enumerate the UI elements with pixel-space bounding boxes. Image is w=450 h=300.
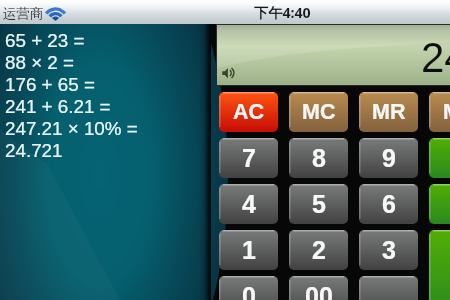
staticText: MC: [302, 100, 336, 124]
staticText: 8: [312, 144, 326, 172]
button[interactable]: =: [429, 230, 450, 300]
staticText: 4: [242, 190, 256, 218]
staticText: .: [385, 282, 392, 300]
button[interactable]: 6: [359, 184, 418, 224]
button[interactable]: MC: [289, 92, 348, 132]
staticText: AC: [233, 100, 265, 124]
staticText: 0: [242, 282, 256, 300]
staticText: 65 + 23 =: [5, 30, 85, 51]
staticText: 1: [242, 236, 256, 264]
staticText: M+: [443, 100, 450, 124]
button[interactable]: 5: [289, 184, 348, 224]
button[interactable]: 1: [219, 230, 278, 270]
staticText: 2: [312, 236, 326, 264]
staticText: 24: [421, 34, 450, 81]
button[interactable]: ×: [429, 184, 450, 224]
button[interactable]: 00: [289, 276, 348, 300]
staticText: MR: [372, 100, 406, 124]
button[interactable]: 3: [359, 230, 418, 270]
button[interactable]: 2: [289, 230, 348, 270]
button[interactable]: 4: [219, 184, 278, 224]
button[interactable]: 9: [359, 138, 418, 178]
staticText: 6: [382, 190, 396, 218]
staticText: 24.721: [5, 140, 63, 161]
staticText: 下午4:40: [254, 3, 311, 22]
staticText: 247.21 × 10% =: [5, 118, 138, 139]
staticText: 176 + 65 =: [5, 74, 95, 95]
other: Wi-Fi: [47, 7, 64, 21]
staticText: 00: [305, 282, 333, 300]
button[interactable]: ÷: [429, 138, 450, 178]
staticText: 241 + 6.21 =: [5, 96, 111, 117]
staticText: 运营商: [3, 5, 44, 22]
staticText: 9: [382, 144, 396, 172]
button[interactable]: M+: [429, 92, 450, 132]
button[interactable]: AC: [219, 92, 278, 132]
staticText: 3: [382, 236, 396, 264]
button[interactable]: 7: [219, 138, 278, 178]
staticText: 88 × 2 =: [5, 52, 74, 73]
button[interactable]: 0: [219, 276, 278, 300]
button[interactable]: MR: [359, 92, 418, 132]
button[interactable]: .: [359, 276, 418, 300]
staticText: 7: [242, 144, 256, 172]
staticText: 5: [312, 190, 326, 218]
button[interactable]: 8: [289, 138, 348, 178]
